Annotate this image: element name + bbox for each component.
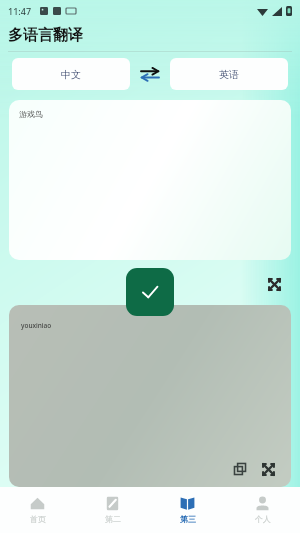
button[interactable]: Translate (126, 268, 174, 316)
staticText: 游戏鸟 (19, 109, 43, 119)
button[interactable]: Swap languages (130, 58, 170, 90)
button[interactable]: youxiniao (9, 305, 291, 487)
staticText: 英语 (219, 68, 239, 81)
staticText: 个人 (255, 514, 271, 524)
button[interactable]: 个人 (225, 487, 300, 533)
button[interactable]: 中文 (12, 58, 130, 90)
staticText: 首页 (30, 514, 46, 524)
button[interactable]: 第三 (150, 487, 225, 533)
staticText: youxiniao (21, 321, 52, 330)
button[interactable]: Expand source (262, 272, 286, 296)
staticText: 多语言翻译 (8, 26, 83, 45)
staticText: 第二 (105, 514, 121, 524)
staticText: 第三 (180, 514, 196, 524)
button[interactable]: Copy (229, 458, 251, 480)
button[interactable]: 英语 (170, 58, 288, 90)
button[interactable]: Expand result (257, 458, 279, 480)
button[interactable]: 首页 (0, 487, 75, 533)
button[interactable]: 第二 (75, 487, 150, 533)
staticText: 中文 (61, 68, 81, 81)
button[interactable]: 游戏鸟 (9, 100, 291, 260)
staticText: 11:47 (8, 5, 32, 17)
